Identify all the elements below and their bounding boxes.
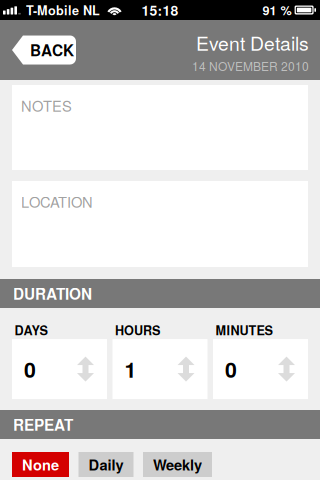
staticText: 0 [225,354,237,384]
staticText: DAYS [14,321,47,339]
staticText: 0 [24,354,36,384]
staticText: Daily [88,454,123,475]
staticText: DURATION [13,282,92,304]
staticText: NOTES [21,95,72,116]
staticText: REPEAT [13,413,73,435]
staticText: HOURS [115,321,160,339]
staticText: 14 NOVEMBER 2010 [192,57,309,74]
staticText: Weekly [153,454,202,475]
staticText: BACK [30,39,74,61]
button[interactable]: Weekly [143,452,212,477]
staticText: Event Details [196,29,309,56]
staticText: None [22,454,59,475]
staticText: LOCATION [21,191,93,212]
button[interactable]: 1 [112,339,207,399]
button[interactable]: Back [12,35,76,64]
button[interactable]: NOTES [12,85,308,170]
staticText: 91 % [263,1,292,19]
button[interactable]: None [12,452,69,477]
button[interactable]: LOCATION [12,181,308,267]
button[interactable]: 0 [12,339,107,399]
staticText: MINUTES [215,321,272,339]
button[interactable]: Daily [78,452,133,477]
staticText: 15:18 [141,0,178,20]
button[interactable]: 0 [213,339,308,399]
staticText: T-Mobile NL [26,1,100,19]
staticText: 1 [124,354,136,384]
